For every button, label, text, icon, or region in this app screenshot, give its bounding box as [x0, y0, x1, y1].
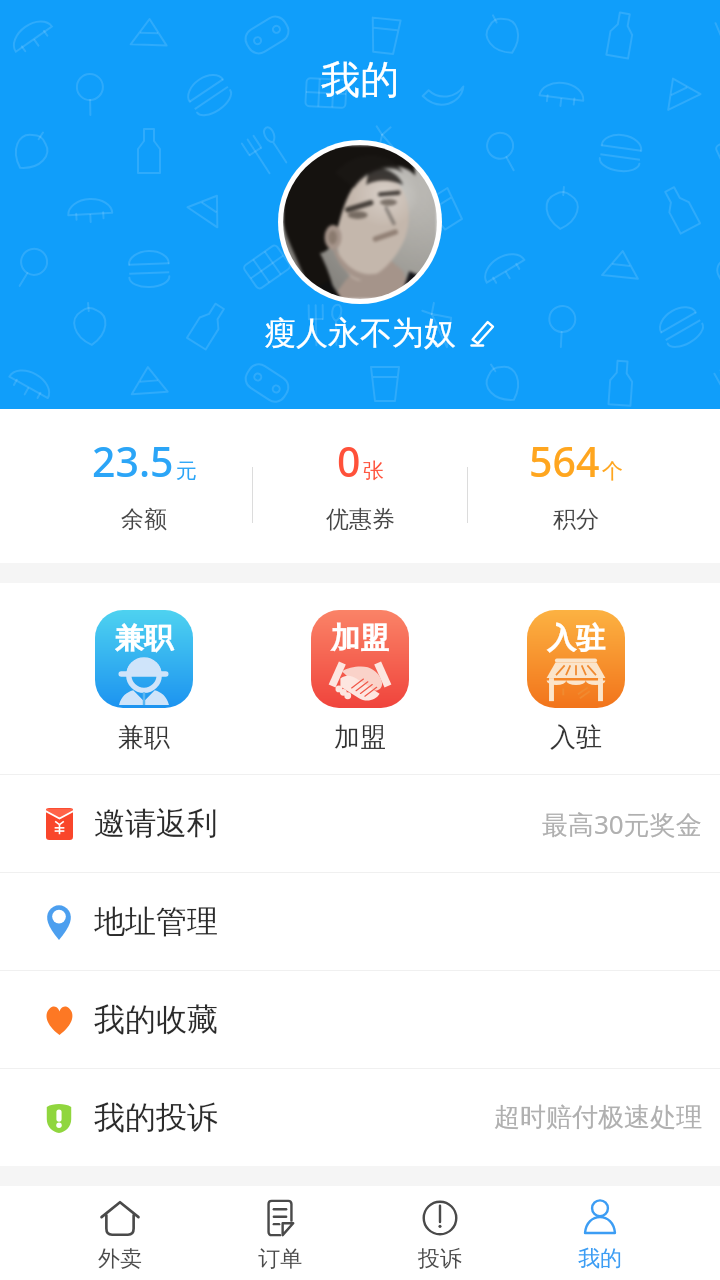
staticText: 优惠券 [326, 505, 395, 534]
staticText: 加盟 [334, 721, 386, 754]
button[interactable]: 头像 [283, 145, 437, 299]
button[interactable]: 23.5 [36, 409, 252, 563]
staticText: 订单 [258, 1245, 302, 1273]
button[interactable]: 入驻 [468, 583, 684, 774]
staticText: 元 [176, 458, 197, 484]
staticText: 张 [363, 458, 384, 484]
staticText: 个 [602, 458, 623, 484]
staticText: 邀请返利 [94, 804, 218, 843]
button[interactable]: 瘦人永不为奴 [264, 313, 456, 353]
staticText: 564 [529, 433, 600, 489]
staticText: 我的收藏 [94, 1000, 218, 1039]
staticText: 我的投诉 [94, 1098, 218, 1137]
staticText: 兼职 [118, 721, 170, 754]
button[interactable]: 地址管理 [0, 873, 720, 970]
staticText: 地址管理 [94, 902, 218, 941]
staticText: 加盟 [331, 620, 389, 657]
button[interactable]: 我的 [520, 1186, 680, 1280]
button[interactable]: 我的投诉 [0, 1069, 720, 1166]
button[interactable]: 编辑昵称 [468, 318, 497, 347]
staticText: 瘦人永不为奴 [264, 313, 456, 353]
button[interactable]: 加盟 [252, 583, 468, 774]
staticText: 我的 [578, 1245, 622, 1273]
staticText: 超时赔付极速处理 [494, 1101, 702, 1134]
button[interactable]: 订单 [200, 1186, 360, 1280]
staticText: 积分 [553, 505, 599, 534]
staticText: 兼职 [115, 620, 173, 657]
button[interactable]: 我的收藏 [0, 971, 720, 1068]
staticText: 入驻 [547, 620, 605, 657]
button[interactable]: 投诉 [360, 1186, 520, 1280]
staticText: 23.5 [92, 433, 174, 489]
staticText: 余额 [121, 505, 167, 534]
button[interactable]: 564 [468, 409, 684, 563]
button[interactable]: 外卖 [40, 1186, 200, 1280]
staticText: 投诉 [418, 1245, 462, 1273]
staticText: 外卖 [98, 1245, 142, 1273]
staticText: 0 [337, 433, 361, 489]
staticText: 我的 [321, 55, 399, 104]
button[interactable]: 0 [252, 409, 468, 563]
button[interactable]: 兼职 [36, 583, 252, 774]
staticText: 入驻 [550, 721, 602, 754]
staticText: 最高30元奖金 [542, 806, 702, 842]
button[interactable]: 邀请返利 [0, 775, 720, 872]
